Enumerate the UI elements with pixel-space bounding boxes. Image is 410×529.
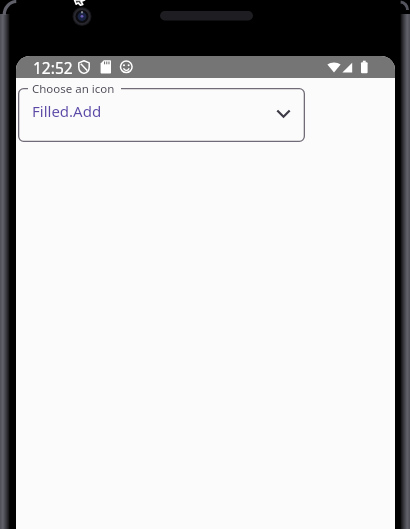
- staticText: Filled.Add: [32, 101, 102, 121]
- staticText: 12:52: [33, 57, 73, 78]
- button[interactable]: Filled.Add: [18, 88, 305, 142]
- staticText: Choose an icon: [32, 81, 115, 97]
